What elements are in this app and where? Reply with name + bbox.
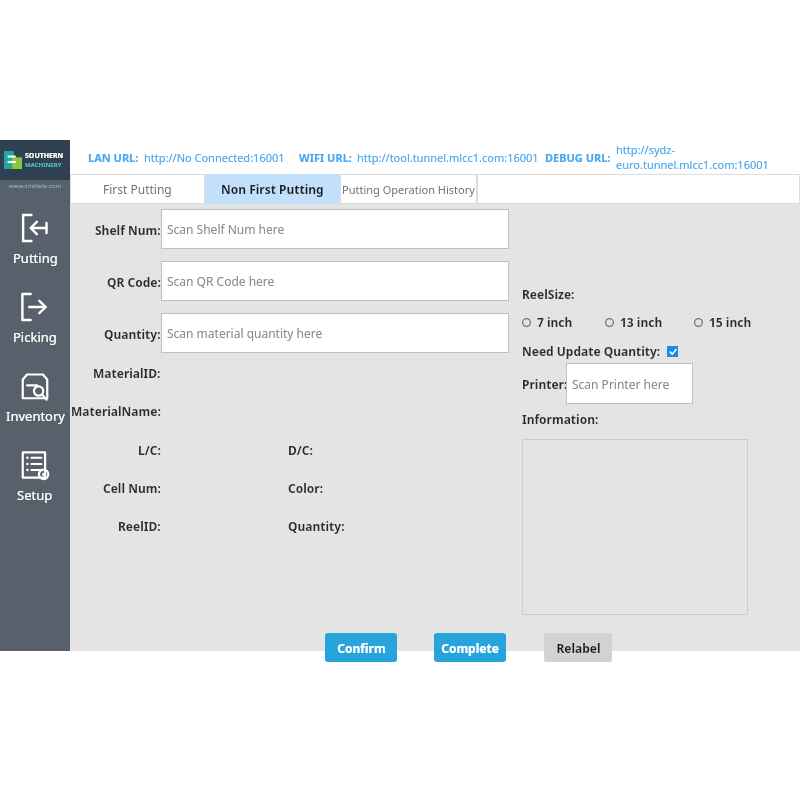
button[interactable]: Putting Operation History	[340, 174, 477, 204]
staticText: QR Code:	[107, 274, 161, 290]
staticText: First Putting	[103, 181, 172, 197]
staticText: 15 inch	[709, 314, 752, 330]
staticText: http://No Connected:16001	[144, 150, 285, 165]
staticText: MaterialID:	[93, 365, 161, 381]
staticText: D/C:	[288, 442, 313, 458]
staticText: SOUTHERN	[25, 151, 64, 161]
staticText: WIFI URL:	[299, 150, 352, 165]
staticText: Printer:	[522, 376, 568, 392]
button[interactable]: First Putting	[70, 174, 205, 204]
staticText: Need Update Quantity:	[522, 343, 661, 359]
staticText: www.smthelp.com	[9, 182, 62, 190]
staticText: Quantity:	[288, 518, 345, 534]
staticText: 13 inch	[620, 314, 663, 330]
staticText: Relabel	[556, 640, 601, 656]
staticText: Scan QR Code here	[167, 273, 275, 289]
button[interactable]: 13 inch	[605, 314, 663, 330]
staticText: LAN URL:	[88, 150, 139, 165]
button[interactable]: Putting	[0, 204, 70, 273]
staticText: 7 inch	[537, 314, 573, 330]
staticText: Complete	[441, 640, 499, 656]
staticText: http://sydz-euro.tunnel.mlcc1.com:16001	[616, 142, 800, 172]
staticText: Cell Num:	[103, 480, 161, 496]
staticText: ReelSize:	[522, 286, 575, 302]
button[interactable]: Scan Printer here	[566, 363, 693, 404]
staticText: L/C:	[138, 442, 161, 458]
staticText: Setup	[17, 486, 53, 504]
button[interactable]: Non First Putting	[205, 174, 340, 204]
staticText: Shelf Num:	[95, 222, 161, 238]
button[interactable]: 15 inch	[694, 314, 752, 330]
button[interactable]: Scan QR Code here	[161, 261, 509, 301]
staticText: MaterialName:	[71, 403, 161, 419]
staticText: Information:	[522, 411, 599, 427]
staticText: Putting	[13, 249, 58, 267]
button[interactable]: 7 inch	[522, 314, 573, 330]
staticText: Scan material quantity here	[167, 325, 323, 341]
staticText: MACHINERY	[25, 161, 62, 169]
staticText: Scan Shelf Num here	[167, 221, 285, 237]
staticText: DEBUG URL:	[545, 150, 611, 165]
other: Southern Machinery logo	[0, 140, 70, 180]
staticText: ReelID:	[118, 518, 161, 534]
button[interactable]: Relabel	[544, 633, 612, 662]
button[interactable]: Need Update Quantity:	[522, 343, 678, 359]
staticText: Non First Putting	[221, 181, 324, 197]
staticText: Color:	[288, 480, 324, 496]
staticText: Confirm	[337, 640, 386, 656]
button[interactable]: Scan Shelf Num here	[161, 209, 509, 249]
staticText: Picking	[13, 328, 57, 346]
staticText: Scan Printer here	[572, 376, 670, 392]
button[interactable]: Picking	[0, 283, 70, 352]
button[interactable]: Complete	[434, 633, 506, 662]
staticText: Quantity:	[104, 326, 161, 342]
button[interactable]: Scan material quantity here	[161, 313, 509, 353]
button[interactable]: Confirm	[325, 633, 397, 662]
staticText: Putting Operation History	[342, 182, 475, 197]
staticText: Inventory	[6, 407, 65, 425]
staticText: http://tool.tunnel.mlcc1.com:16001	[357, 150, 539, 165]
button[interactable]: Setup	[0, 441, 70, 510]
button[interactable]: Inventory	[0, 362, 70, 431]
